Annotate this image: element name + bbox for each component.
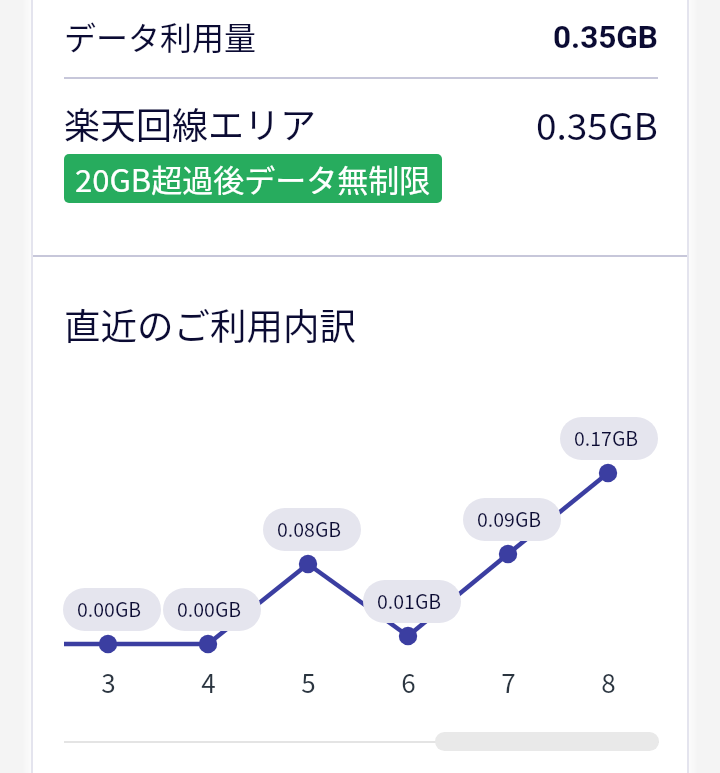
button[interactable]: 0.09GB bbox=[463, 498, 561, 541]
staticText: 楽天回線エリア bbox=[64, 97, 317, 149]
staticText: 0.00GB bbox=[77, 594, 142, 622]
button[interactable]: 20GB超過後データ無制限 bbox=[64, 154, 442, 203]
staticText: 3 bbox=[101, 663, 116, 701]
staticText: 8 bbox=[601, 663, 616, 701]
button[interactable]: 0.00GB bbox=[63, 588, 161, 631]
staticText: 直近のご利用内訳 bbox=[64, 298, 356, 351]
staticText: 0.08GB bbox=[277, 514, 342, 542]
staticText: 0.01GB bbox=[377, 586, 442, 614]
staticText: 20GB超過後データ無制限 bbox=[75, 156, 431, 201]
staticText: 0.17GB bbox=[574, 423, 639, 451]
staticText: 0.00GB bbox=[177, 594, 242, 622]
button[interactable]: 0.08GB bbox=[263, 508, 361, 551]
button[interactable]: 0.00GB bbox=[163, 588, 261, 631]
staticText: 6 bbox=[401, 663, 416, 701]
staticText: 5 bbox=[301, 663, 316, 701]
staticText: 7 bbox=[501, 663, 516, 701]
staticText: 0.35GB bbox=[536, 97, 658, 151]
staticText: データ利用量 bbox=[64, 13, 257, 59]
staticText: 4 bbox=[201, 663, 216, 701]
button[interactable]: 0.01GB bbox=[363, 580, 461, 623]
staticText: 0.35GB bbox=[553, 19, 658, 56]
button[interactable]: 0.17GB bbox=[560, 417, 658, 460]
staticText: 0.09GB bbox=[477, 504, 542, 532]
